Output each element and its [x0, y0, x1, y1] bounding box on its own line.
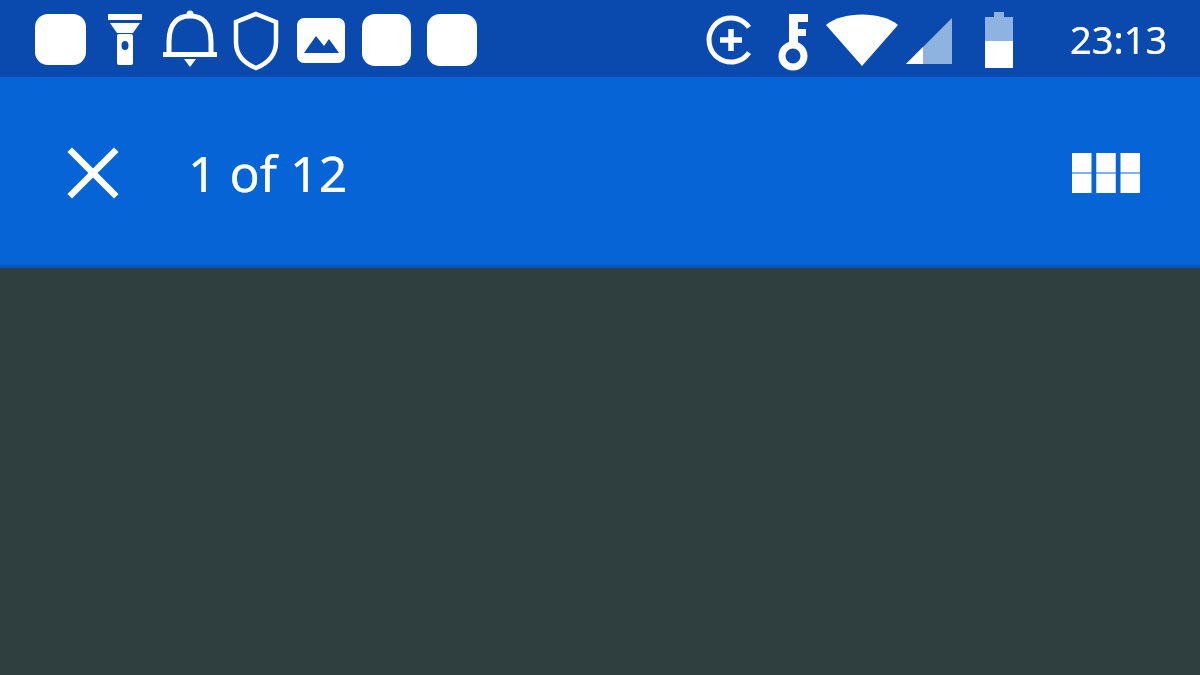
- button[interactable]: Close: [57, 137, 129, 209]
- staticText: 23:13: [1070, 13, 1168, 65]
- staticText: 1 of 12: [188, 139, 348, 207]
- button[interactable]: Grid view: [1058, 125, 1154, 221]
